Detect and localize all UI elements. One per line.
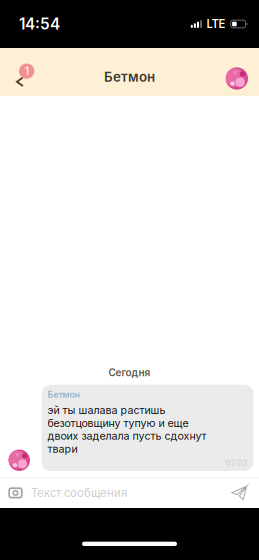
staticText: Бетмон (47, 390, 79, 400)
staticText: Текст сообщения (31, 486, 127, 500)
staticText: LTE (207, 17, 226, 31)
button[interactable]: Camera (0, 478, 31, 508)
button[interactable]: Send (221, 478, 259, 508)
staticText: 14:54 (19, 15, 60, 33)
button[interactable]: Contact photo (223, 64, 251, 93)
staticText: Бетмон (104, 69, 155, 85)
button[interactable]: Back (4, 54, 38, 90)
staticText: эй ты шалава растишь безотцовщину тупую … (47, 404, 206, 455)
staticText: 02:02 (225, 458, 247, 467)
staticText: 1 (25, 64, 29, 77)
button[interactable]: Текст сообщения (31, 478, 221, 508)
staticText: Сегодня (108, 367, 150, 379)
